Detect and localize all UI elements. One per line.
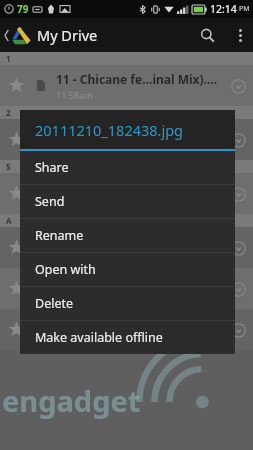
staticText: 2 — [6, 107, 11, 118]
staticText: Make available offline — [35, 329, 163, 346]
staticText: 79 — [17, 2, 29, 16]
staticText: A — [6, 215, 12, 226]
staticText: engadget — [2, 381, 141, 420]
staticText: My Drive — [37, 25, 98, 45]
button[interactable]: Item actions — [224, 234, 252, 262]
button[interactable]: Share — [20, 151, 235, 184]
staticText: Apps: Android — [56, 274, 140, 290]
button[interactable]: Open with — [20, 253, 235, 286]
staticText: Rename — [35, 227, 84, 244]
staticText: PM — [239, 4, 250, 14]
button[interactable]: Apps: Android — [0, 268, 253, 309]
staticText: 3 Dec 2011 — [56, 243, 103, 255]
button[interactable]: Rename — [20, 219, 235, 252]
button[interactable]: My Drive — [0, 25, 104, 45]
button[interactable]: 3 Dec 2011 — [0, 227, 253, 268]
button[interactable]: Item actions — [0, 119, 253, 160]
button[interactable]: Item actions — [224, 275, 252, 303]
staticText: 11:58am — [56, 89, 93, 101]
staticText: 11 - Chicane fe…inal Mix).mp3 — [56, 71, 224, 87]
button[interactable]: Item actions — [224, 316, 252, 344]
button[interactable]: Delete — [20, 287, 235, 320]
button[interactable]: Item actions — [224, 72, 252, 100]
staticText: Delete — [35, 295, 74, 312]
staticText: 20111210_182438.jpg — [35, 120, 184, 140]
button[interactable]: More options — [227, 18, 253, 52]
button[interactable]: Search — [187, 18, 227, 52]
staticText: 1 — [6, 53, 11, 64]
button[interactable]: Send — [20, 185, 235, 218]
button[interactable]: Make available offline — [20, 321, 235, 354]
button[interactable]: 11 - Chicane fe…inal Mix).mp3 — [0, 65, 253, 106]
staticText: Open with — [35, 261, 96, 278]
button[interactable]: Item actions — [224, 180, 252, 208]
staticText: Send — [35, 193, 65, 210]
button[interactable]: Item actions — [224, 126, 252, 154]
button[interactable]: Item actions — [0, 173, 253, 214]
button[interactable]: Apps: iPhone — [0, 309, 253, 350]
staticText: 12:14 — [210, 2, 237, 16]
staticText: Share — [35, 159, 69, 176]
staticText: 10 Mar — [56, 292, 86, 304]
staticText: 10 Mar — [56, 333, 86, 345]
staticText: Apps: iPhone — [56, 315, 134, 331]
staticText: 5 — [6, 161, 11, 172]
